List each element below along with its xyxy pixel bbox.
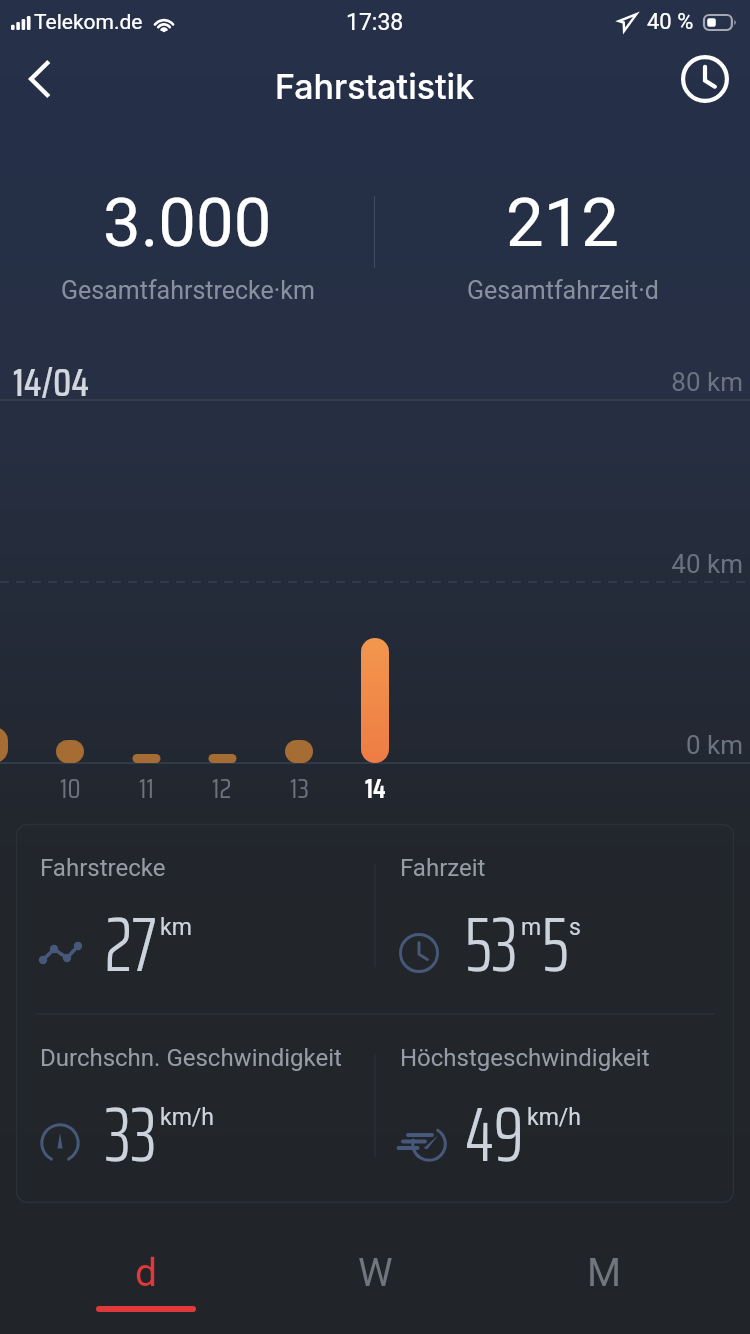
staticText: 0 km xyxy=(0,730,743,760)
button[interactable]: Back xyxy=(12,50,70,108)
staticText: Durchschn. Geschwindigkeit xyxy=(40,1044,342,1072)
staticText: km xyxy=(160,914,192,941)
staticText: Gesamtfahrstrecke·km xyxy=(61,276,315,305)
staticText: 12 xyxy=(212,767,232,809)
staticText: 80 km xyxy=(0,367,743,397)
button[interactable]: d xyxy=(21,1211,271,1334)
staticText: 11 xyxy=(139,767,154,809)
staticText: 3.000 xyxy=(103,184,272,263)
staticText: Fahrstatistik xyxy=(275,66,475,107)
staticText: 14/04 xyxy=(13,353,90,413)
staticText: km/h xyxy=(527,1104,581,1131)
staticText: 27 xyxy=(105,885,157,1005)
staticText: 13 xyxy=(290,767,309,809)
staticText: Höchstgeschwindigkeit xyxy=(400,1044,650,1072)
staticText: 40 % xyxy=(647,9,694,35)
button[interactable]: Fahrstrecke xyxy=(16,824,368,1014)
button[interactable]: Fahrzeit xyxy=(376,824,728,1014)
staticText: s xyxy=(569,914,581,941)
button[interactable]: M xyxy=(479,1211,729,1334)
staticText: km/h xyxy=(160,1104,214,1131)
staticText: 14 xyxy=(365,767,386,809)
button[interactable]: Durchschn. Geschwindigkeit xyxy=(16,1014,368,1204)
staticText: Fahrzeit xyxy=(400,854,486,882)
staticText: Gesamtfahrzeit·d xyxy=(467,276,659,305)
button[interactable]: W xyxy=(250,1211,500,1334)
staticText: M xyxy=(587,1250,622,1296)
staticText: 212 xyxy=(506,184,619,263)
staticText: 40 km xyxy=(0,549,743,579)
staticText: m xyxy=(521,914,542,941)
button[interactable]: History xyxy=(676,50,734,108)
staticText: W xyxy=(358,1250,393,1296)
staticText: d xyxy=(135,1250,157,1296)
staticText: 53 xyxy=(465,885,518,1005)
staticText: 10 xyxy=(60,767,81,809)
button[interactable]: Höchstgeschwindigkeit xyxy=(376,1014,728,1204)
staticText: 33 xyxy=(105,1075,157,1195)
staticText: 17:38 xyxy=(346,9,404,36)
staticText: 5 xyxy=(542,885,569,1005)
staticText: 49 xyxy=(465,1075,524,1195)
staticText: Fahrstrecke xyxy=(40,854,166,882)
staticText: Telekom.de xyxy=(34,10,143,35)
